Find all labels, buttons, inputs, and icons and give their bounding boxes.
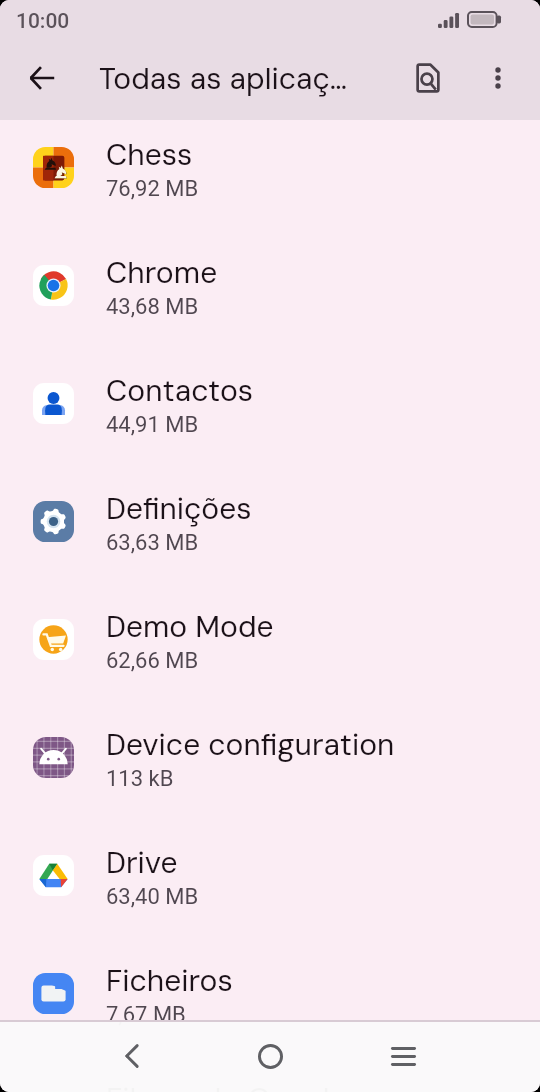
staticText: 63,63 MB [106, 530, 199, 556]
button[interactable]: Device configuration [0, 710, 540, 828]
button[interactable]: Home [239, 1025, 301, 1087]
button[interactable]: Ficheiros [0, 946, 540, 1064]
button[interactable]: Back [18, 54, 66, 102]
button[interactable]: Drive [0, 828, 540, 946]
staticText: 62,66 MB [106, 648, 199, 674]
staticText: Chess [106, 135, 193, 174]
staticText: 76,92 MB [106, 176, 199, 202]
button[interactable]: Definições [0, 474, 540, 592]
staticText: Demo Mode [106, 607, 274, 646]
button[interactable]: Filmes do Google [0, 1064, 540, 1092]
staticText: 44,91 MB [106, 412, 199, 438]
staticText: Todas as aplicaç… [99, 59, 348, 98]
button[interactable]: Demo Mode [0, 592, 540, 710]
staticText: 113 kB [106, 766, 174, 792]
staticText: 10:00 [16, 9, 70, 34]
button[interactable]: Chrome [0, 238, 540, 356]
staticText: 63,40 MB [106, 884, 199, 910]
button[interactable]: Contactos [0, 356, 540, 474]
staticText: Chrome [106, 253, 218, 292]
button[interactable]: Search in page [404, 54, 452, 102]
staticText: Ficheiros [106, 961, 233, 1000]
button[interactable]: Recent apps [372, 1025, 434, 1087]
button[interactable]: More options [474, 54, 522, 102]
button[interactable]: Chess [0, 120, 540, 238]
staticText: 7,67 MB [106, 1002, 186, 1028]
staticText: Drive [106, 843, 178, 882]
button[interactable]: Back [101, 1025, 163, 1087]
staticText: Contactos [106, 371, 254, 410]
staticText: Device configuration [106, 725, 395, 764]
staticText: 43,68 MB [106, 294, 199, 320]
staticText: Definições [106, 489, 252, 528]
